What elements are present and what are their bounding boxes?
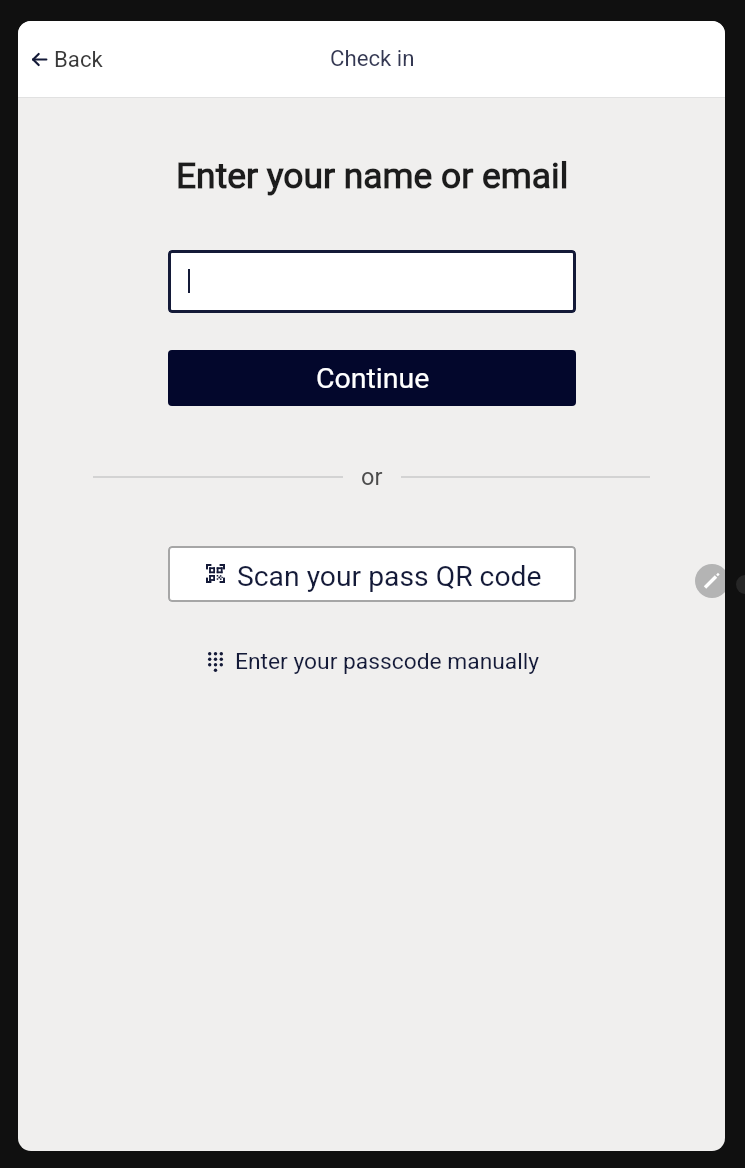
staticText: Check in [330, 45, 415, 71]
button[interactable] [168, 250, 576, 313]
staticText: or [361, 463, 383, 491]
staticText: Enter your name or email [176, 155, 569, 196]
button[interactable]: Enter your passcode manually [203, 641, 563, 687]
staticText: Scan your pass QR code [237, 560, 542, 593]
button[interactable]: Continue [168, 350, 576, 406]
button[interactable]: Edit [695, 564, 725, 598]
staticText: Back [54, 46, 103, 72]
staticText: Enter your passcode manually [235, 648, 540, 675]
staticText: Continue [316, 362, 430, 395]
button[interactable]: Scan your pass QR code [168, 546, 576, 602]
button[interactable]: Back [28, 39, 138, 83]
